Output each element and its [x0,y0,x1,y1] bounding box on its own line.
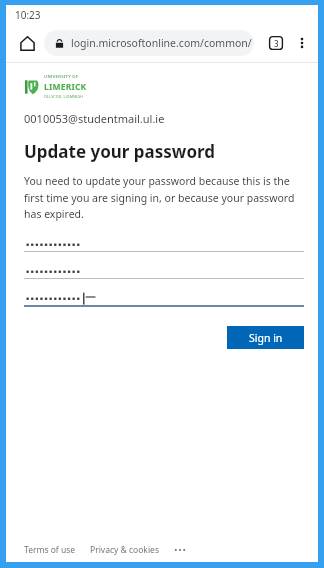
staticText: UNIVERSITY OF [44,74,79,80]
button[interactable] [24,238,304,252]
staticText: LIMERICK [44,81,87,93]
button[interactable]: Sign in [227,326,304,349]
button[interactable] [24,265,304,279]
staticText: OLLSCOIL LUIMNIGH [44,94,84,99]
button[interactable]: Home [12,28,42,58]
button[interactable]: Tabs, 3 open [264,31,288,55]
staticText: login.microsoftonline.com/common/ [71,36,252,50]
button[interactable]: login.microsoftonline.com/common/ [44,30,254,56]
staticText: Terms of use [24,544,76,556]
staticText: Privacy & cookies [90,544,159,556]
staticText: 0010053@studentmail.ul.ie [24,111,165,126]
staticText: 3 [274,38,279,49]
button[interactable]: Terms of use [24,544,76,556]
button[interactable]: More [171,542,189,558]
staticText: You need to update your password because… [24,174,304,221]
staticText: Update your password [24,140,216,163]
button[interactable] [24,292,304,307]
staticText: 10:23 [15,8,41,22]
staticText: Sign in [249,331,283,345]
button[interactable]: More options [290,31,314,55]
button[interactable]: Privacy & cookies [90,544,159,556]
